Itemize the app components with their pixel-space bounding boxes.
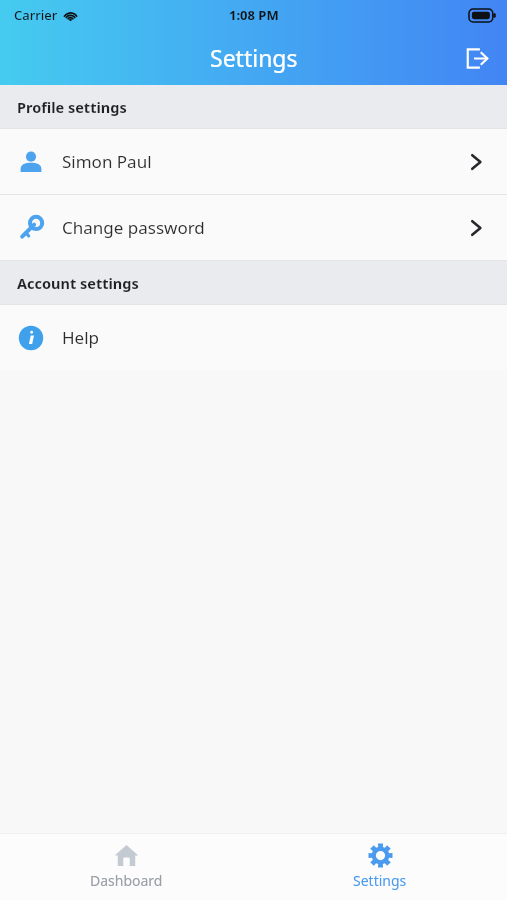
button[interactable]: Help bbox=[0, 305, 507, 370]
staticText: Settings bbox=[353, 871, 407, 890]
staticText: Simon Paul bbox=[62, 150, 152, 173]
button[interactable]: Change password bbox=[0, 195, 507, 260]
staticText: Profile settings bbox=[17, 97, 127, 117]
staticText: Change password bbox=[62, 216, 205, 239]
staticText: 1:08 PM bbox=[229, 6, 279, 24]
staticText: Settings bbox=[210, 42, 298, 73]
button[interactable]: Log out bbox=[453, 35, 499, 81]
staticText: Carrier bbox=[14, 6, 58, 24]
button[interactable]: Settings bbox=[253, 833, 507, 900]
staticText: Dashboard bbox=[90, 871, 163, 890]
staticText: Account settings bbox=[17, 273, 139, 293]
button[interactable]: Dashboard bbox=[0, 833, 253, 900]
button[interactable]: Simon Paul bbox=[0, 129, 507, 194]
staticText: Help bbox=[62, 326, 100, 349]
